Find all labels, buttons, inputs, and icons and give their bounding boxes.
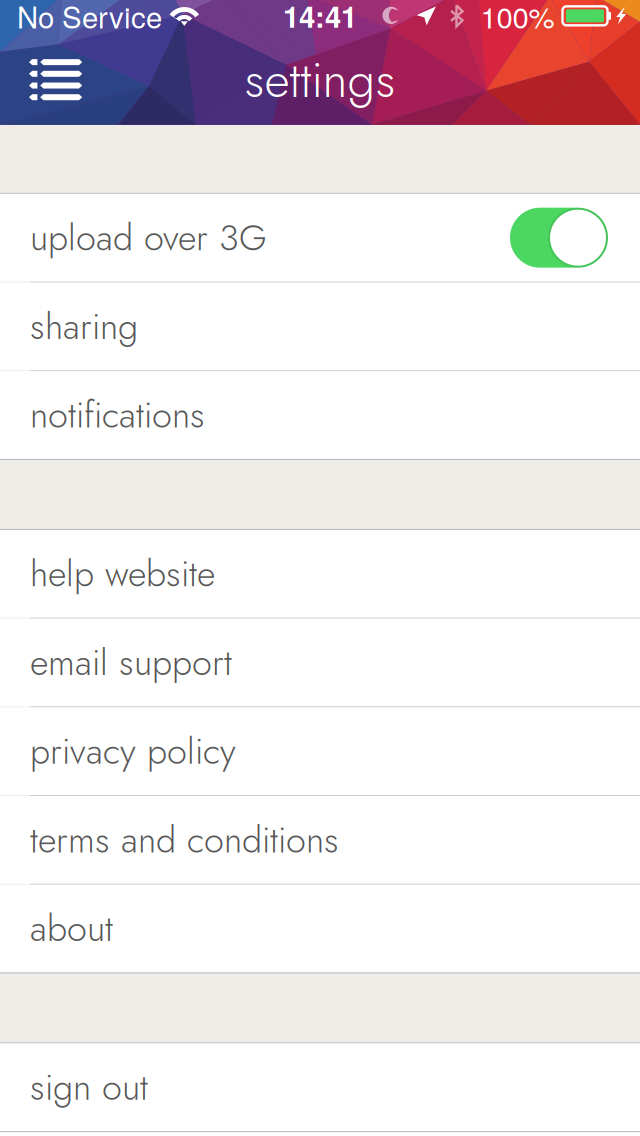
button[interactable]: sign out xyxy=(0,1043,640,1131)
staticText: sign out xyxy=(30,1061,148,1113)
staticText: notifications xyxy=(30,389,205,441)
button[interactable]: privacy policy xyxy=(0,707,640,795)
button[interactable]: Menu xyxy=(0,36,124,124)
staticText: sharing xyxy=(30,300,138,352)
button[interactable]: terms and conditions xyxy=(0,796,640,884)
button[interactable]: email support xyxy=(0,619,640,706)
staticText: 100% xyxy=(480,0,554,37)
staticText: No Service xyxy=(17,0,162,37)
button[interactable]: help website xyxy=(0,530,640,618)
staticText: help website xyxy=(30,548,215,600)
staticText: 14:41 xyxy=(283,0,357,37)
button[interactable]: sharing xyxy=(0,283,640,370)
staticText: about xyxy=(30,903,113,955)
staticText: upload over 3G xyxy=(30,212,267,264)
button[interactable]: about xyxy=(0,885,640,972)
button[interactable]: upload over 3G xyxy=(0,194,640,282)
button[interactable]: notifications xyxy=(0,371,640,459)
staticText: settings xyxy=(244,44,395,115)
staticText: terms and conditions xyxy=(30,814,339,866)
staticText: privacy policy xyxy=(30,725,236,777)
staticText: email support xyxy=(30,636,232,688)
